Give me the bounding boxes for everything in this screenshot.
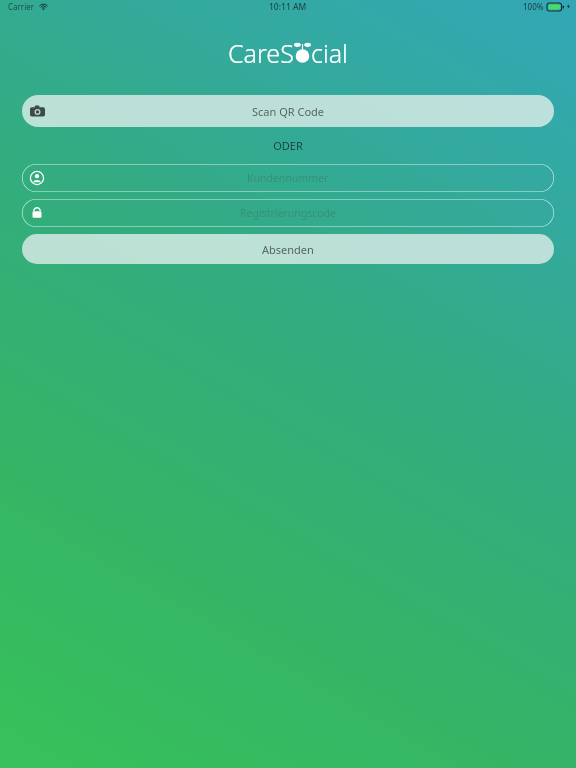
staticText: 100% <box>523 1 544 12</box>
staticText: cial <box>311 36 348 70</box>
staticText: Scan QR Code <box>252 104 325 119</box>
staticText: Carrier <box>8 1 35 12</box>
staticText: CareS <box>228 36 294 70</box>
staticText: Absenden <box>262 242 314 257</box>
staticText: Registrierungscode <box>240 206 336 220</box>
staticText: ODER <box>0 138 576 153</box>
staticText: Kundennummer <box>247 171 329 185</box>
button[interactable]: Registrierungscode <box>22 199 554 227</box>
staticText: 10:11 AM <box>269 1 307 13</box>
button[interactable]: Scan QR Code <box>22 95 554 127</box>
button[interactable]: Absenden <box>22 234 554 264</box>
button[interactable]: Kundennummer <box>22 164 554 192</box>
